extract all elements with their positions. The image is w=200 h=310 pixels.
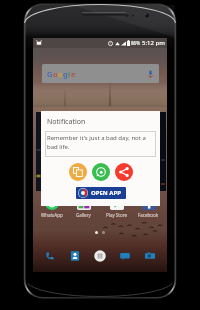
button[interactable]: Play Store	[102, 196, 131, 218]
button[interactable]: Contacts	[67, 248, 83, 264]
button[interactable]: Messages	[117, 248, 133, 264]
staticText: o	[58, 69, 63, 79]
staticText: Play Store	[106, 212, 127, 218]
button[interactable]: Facebook	[134, 196, 163, 218]
other: Voice search	[148, 70, 153, 79]
staticText: 5:12 pm	[142, 39, 165, 47]
staticText: 86%	[131, 40, 140, 46]
button[interactable]: G	[42, 64, 159, 83]
button[interactable]: Gallery	[69, 196, 98, 218]
staticText: Notification	[47, 117, 86, 127]
staticText: o	[53, 69, 58, 79]
staticText: e	[71, 69, 76, 79]
staticText: g	[63, 69, 68, 79]
button[interactable]: Share	[115, 163, 133, 181]
button[interactable]: Apps	[92, 248, 108, 264]
staticText: G	[47, 69, 53, 79]
staticText: l	[68, 69, 71, 79]
button[interactable]: Copy	[69, 163, 87, 181]
button[interactable]: OPEN APP	[76, 187, 126, 199]
staticText: WhatsApp	[41, 212, 63, 218]
button[interactable]: Camera	[142, 248, 158, 264]
staticText: Remember it's just a bad day, not a bad …	[47, 134, 146, 151]
button[interactable]: Phone	[42, 248, 58, 264]
staticText: OPEN APP	[91, 189, 121, 197]
staticText: Facebook	[138, 212, 159, 218]
button[interactable]: WhatsApp	[37, 196, 66, 218]
staticText: Gallery	[76, 212, 91, 218]
button[interactable]: WhatsApp	[92, 163, 110, 181]
